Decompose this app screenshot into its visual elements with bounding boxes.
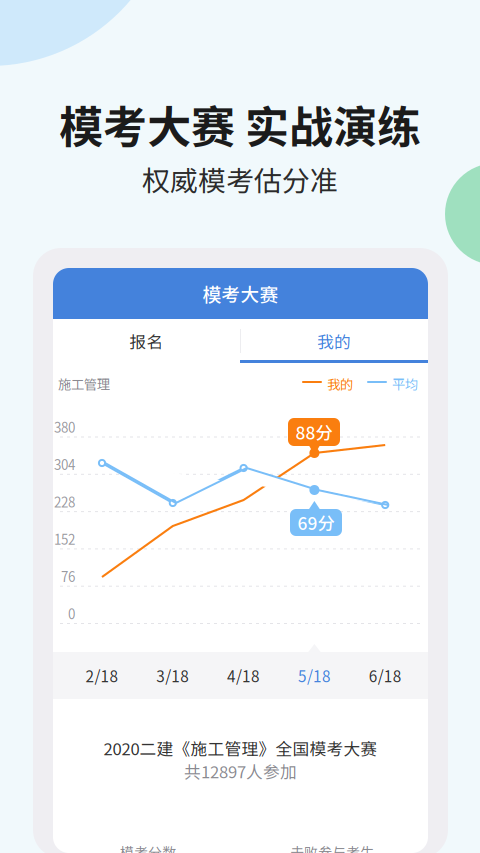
button[interactable]: 我的 [240, 319, 428, 363]
button[interactable]: 2/18 [67, 652, 137, 699]
staticText: 304 [54, 455, 75, 474]
staticText: 380 [54, 417, 75, 437]
staticText: 5/18 [298, 664, 331, 687]
staticText: 我的 [317, 329, 351, 353]
staticText: 我的 [327, 374, 353, 393]
staticText: 152 [54, 529, 75, 548]
button[interactable]: 4/18 [209, 652, 279, 699]
staticText: 4/18 [227, 664, 260, 687]
button[interactable]: 报名 [53, 319, 240, 363]
staticText: 施工管理 [58, 374, 110, 393]
staticText: 2/18 [85, 664, 118, 687]
staticText: 平均 [392, 374, 418, 393]
staticText: 3/18 [156, 664, 189, 687]
staticText: 模考大赛 实战演练 [59, 92, 421, 156]
staticText: 模考分数 [120, 842, 176, 853]
staticText: 76 [61, 566, 75, 586]
staticText: 0 [68, 604, 75, 623]
button[interactable]: 3/18 [138, 652, 208, 699]
button[interactable]: 6/18 [350, 652, 420, 699]
staticText: 击败参与考生 [290, 842, 374, 853]
staticText: 6/18 [369, 664, 402, 687]
staticText: 权威模考估分准 [142, 159, 338, 199]
button[interactable]: 5/18 [279, 652, 349, 699]
staticText: 69分 [297, 510, 334, 535]
staticText: 2020二建《施工管理》全国模考大赛 [103, 736, 377, 760]
staticText: 共12897人参加 [184, 759, 297, 783]
staticText: 模考大赛 [202, 280, 278, 307]
staticText: 88分 [295, 419, 332, 445]
staticText: 228 [54, 492, 75, 511]
staticText: 报名 [129, 329, 163, 353]
